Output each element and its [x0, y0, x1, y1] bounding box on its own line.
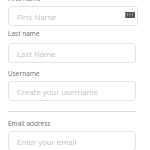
button[interactable]: First Name — [8, 6, 138, 26]
staticText: Last Name — [17, 48, 56, 59]
staticText: Username — [8, 69, 40, 78]
staticText: Create your username — [17, 86, 99, 97]
staticText: Enter your email — [17, 136, 77, 147]
staticText: First name — [8, 0, 41, 3]
button[interactable]: Create your username — [8, 81, 136, 101]
button[interactable]: Enter your email — [8, 131, 136, 150]
staticText: First Name — [17, 11, 57, 22]
staticText: Last name — [8, 29, 40, 38]
button[interactable]: Last Name — [8, 43, 136, 63]
staticText: Email address — [8, 119, 51, 128]
